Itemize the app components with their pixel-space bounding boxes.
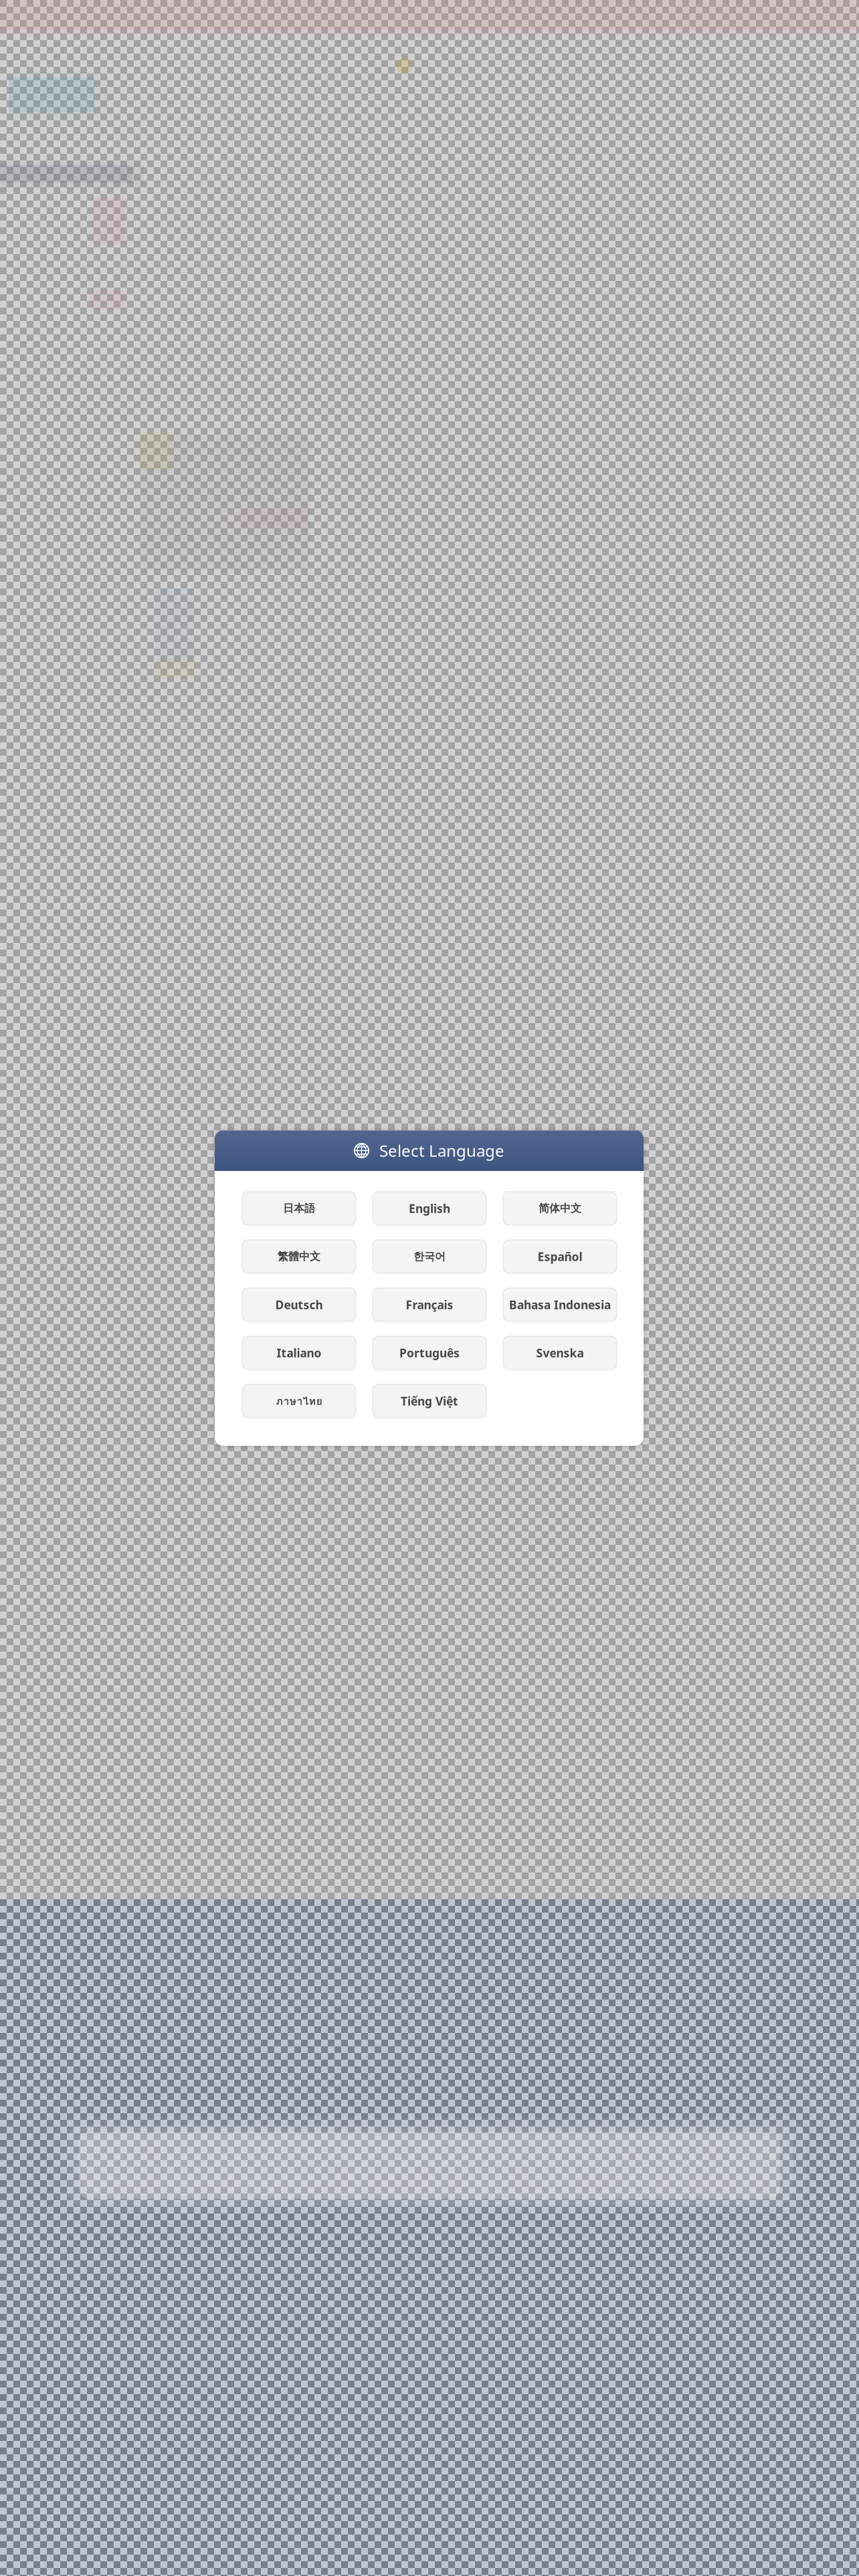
staticText: 简体中文 — [539, 1202, 581, 1215]
button[interactable]: Deutsch — [242, 1288, 356, 1321]
button[interactable]: Français — [373, 1288, 486, 1321]
button[interactable]: 繁體中文 — [242, 1240, 356, 1273]
staticText: Português — [399, 1345, 460, 1361]
button[interactable]: 简体中文 — [503, 1192, 617, 1225]
button[interactable]: English — [373, 1192, 486, 1225]
staticText: ภาษาไทย — [276, 1393, 322, 1409]
staticText: 繁體中文 — [278, 1250, 320, 1263]
staticText: Deutsch — [275, 1297, 323, 1312]
button[interactable]: Português — [373, 1336, 486, 1370]
staticText: Select Language — [379, 1140, 504, 1161]
staticText: Español — [538, 1249, 582, 1264]
button[interactable]: Bahasa Indonesia — [503, 1288, 617, 1321]
staticText: 한국어 — [413, 1250, 446, 1263]
staticText: English — [409, 1201, 450, 1216]
staticText: Tiếng Việt — [401, 1393, 458, 1409]
button[interactable]: Svenska — [503, 1336, 617, 1370]
staticText: Italiano — [277, 1345, 321, 1361]
button[interactable]: Español — [503, 1240, 617, 1273]
button[interactable]: Tiếng Việt — [373, 1384, 486, 1418]
staticText: 日本語 — [283, 1202, 315, 1215]
staticText: Bahasa Indonesia — [509, 1297, 611, 1312]
button[interactable]: 日本語 — [242, 1192, 356, 1225]
button[interactable]: 한국어 — [373, 1240, 486, 1273]
staticText: Svenska — [536, 1345, 584, 1361]
button[interactable]: Italiano — [242, 1336, 356, 1370]
staticText: Français — [406, 1297, 453, 1312]
button[interactable]: ภาษาไทย — [242, 1384, 356, 1418]
